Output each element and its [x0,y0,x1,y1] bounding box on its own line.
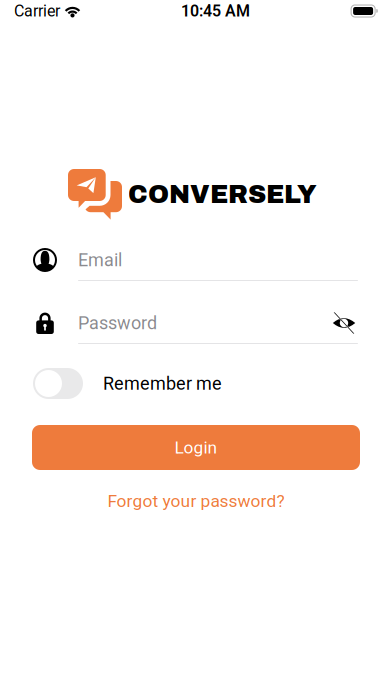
staticText: CONVERSELY [128,181,317,208]
button[interactable]: Login [32,425,360,470]
staticText: Remember me [103,373,222,394]
button[interactable]: Forgot your password? [107,492,284,510]
staticText: Login [174,437,217,458]
staticText: Password [78,312,157,334]
staticText: Forgot your password? [107,491,284,511]
staticText: Email [78,249,122,271]
button[interactable]: Show password [330,312,358,334]
staticText: 10:45 AM [181,2,250,20]
staticText: Carrier [14,2,60,20]
button[interactable]: Remember me [33,368,222,399]
